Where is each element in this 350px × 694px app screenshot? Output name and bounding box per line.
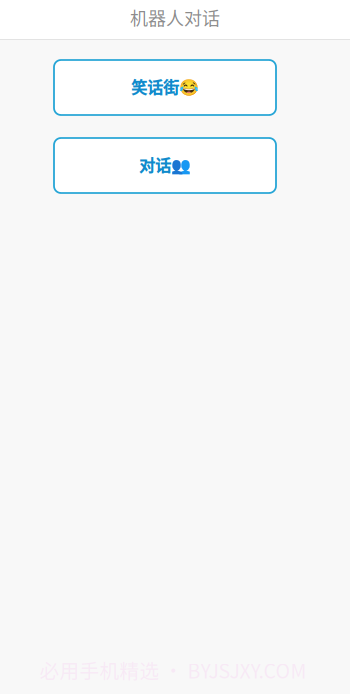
staticText: 机器人对话 [130, 4, 220, 31]
staticText: 笑话街😂 [131, 75, 199, 98]
button[interactable]: 笑话街😂 [54, 60, 276, 115]
staticText: 必用手机精选 · BYJSJXY.COM [39, 656, 306, 684]
staticText: 对话👥 [139, 153, 191, 176]
button[interactable]: 对话👥 [54, 138, 276, 193]
